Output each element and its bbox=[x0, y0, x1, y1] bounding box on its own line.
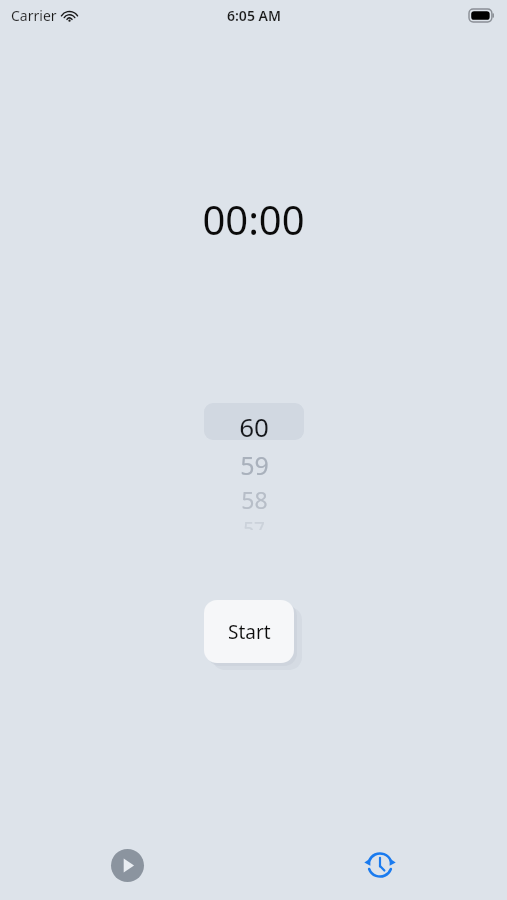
staticText: Start bbox=[228, 619, 271, 645]
staticText: 57 bbox=[243, 516, 265, 530]
staticText: Carrier bbox=[11, 6, 57, 25]
button[interactable]: 60 bbox=[184, 400, 324, 530]
button[interactable]: Play bbox=[107, 845, 147, 885]
staticText: 58 bbox=[241, 484, 268, 515]
staticText: 00:00 bbox=[0, 192, 507, 246]
staticText: 60 bbox=[239, 409, 269, 444]
button[interactable]: Start bbox=[204, 600, 294, 663]
staticText: 59 bbox=[240, 448, 269, 482]
button[interactable]: Restore bbox=[360, 845, 400, 885]
staticText: 6:05 AM bbox=[227, 6, 281, 25]
